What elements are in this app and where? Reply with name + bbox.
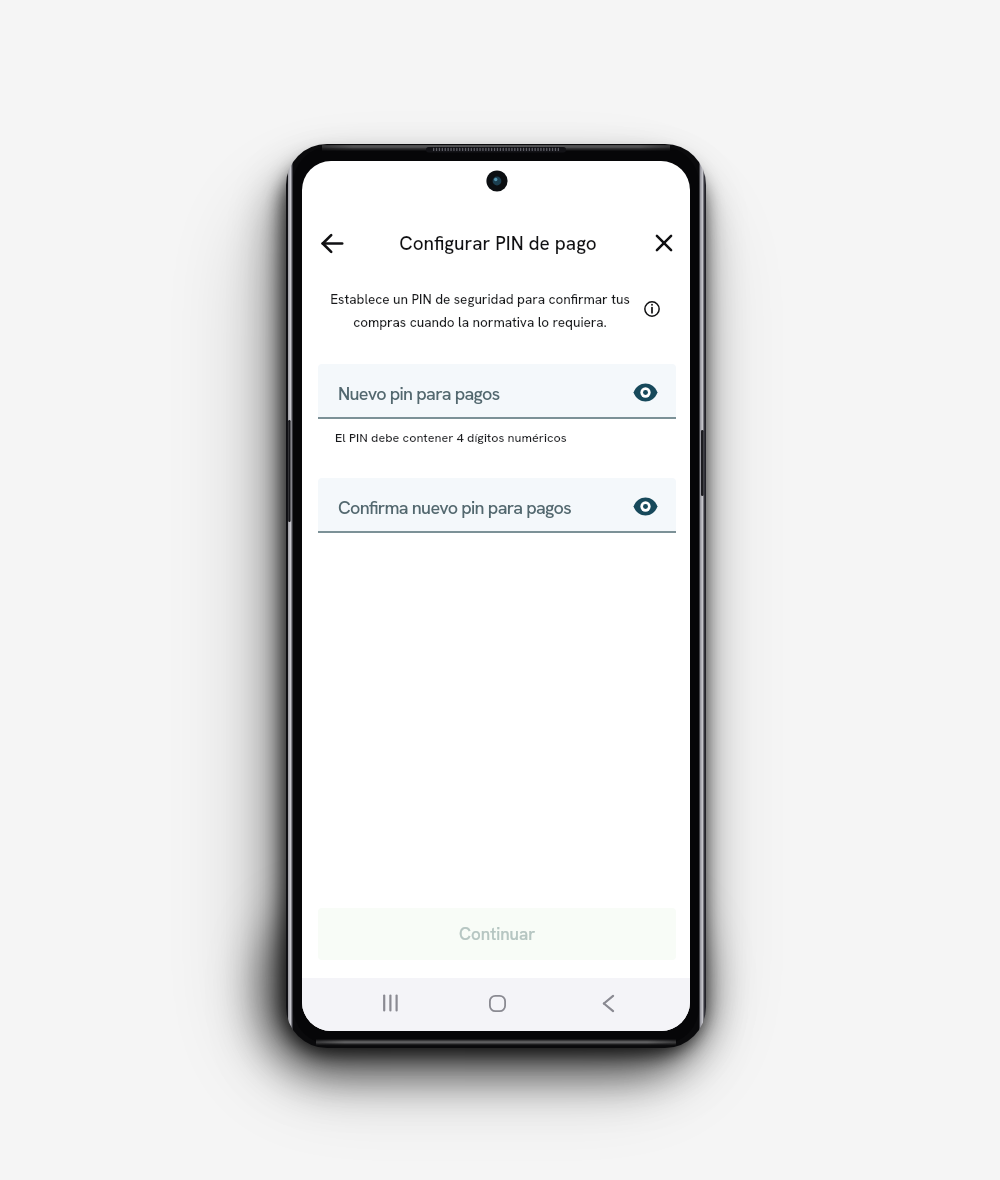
button[interactable]: Show PIN xyxy=(630,377,660,407)
button[interactable]: Continuar xyxy=(318,908,676,960)
button[interactable]: Back xyxy=(308,219,356,267)
button[interactable]: Show PIN xyxy=(630,491,660,521)
button[interactable]: Back xyxy=(586,981,630,1025)
staticText: Nuevo pin para pagos xyxy=(338,382,500,405)
staticText: El PIN debe contener 4 dígitos numéricos xyxy=(335,429,567,445)
button[interactable]: Nuevo pin para pagos xyxy=(318,364,676,419)
button[interactable]: Confirma nuevo pin para pagos xyxy=(318,478,676,533)
button[interactable]: Recent apps xyxy=(368,981,412,1025)
staticText: Continuar xyxy=(459,923,536,945)
button[interactable]: Home xyxy=(475,981,519,1025)
button[interactable]: More information xyxy=(635,292,669,326)
staticText: Establece un PIN de seguridad para confi… xyxy=(320,290,640,331)
staticText: Confirma nuevo pin para pagos xyxy=(338,496,571,519)
staticText: Configurar PIN de pago xyxy=(399,231,597,256)
button[interactable]: Close xyxy=(640,219,688,267)
